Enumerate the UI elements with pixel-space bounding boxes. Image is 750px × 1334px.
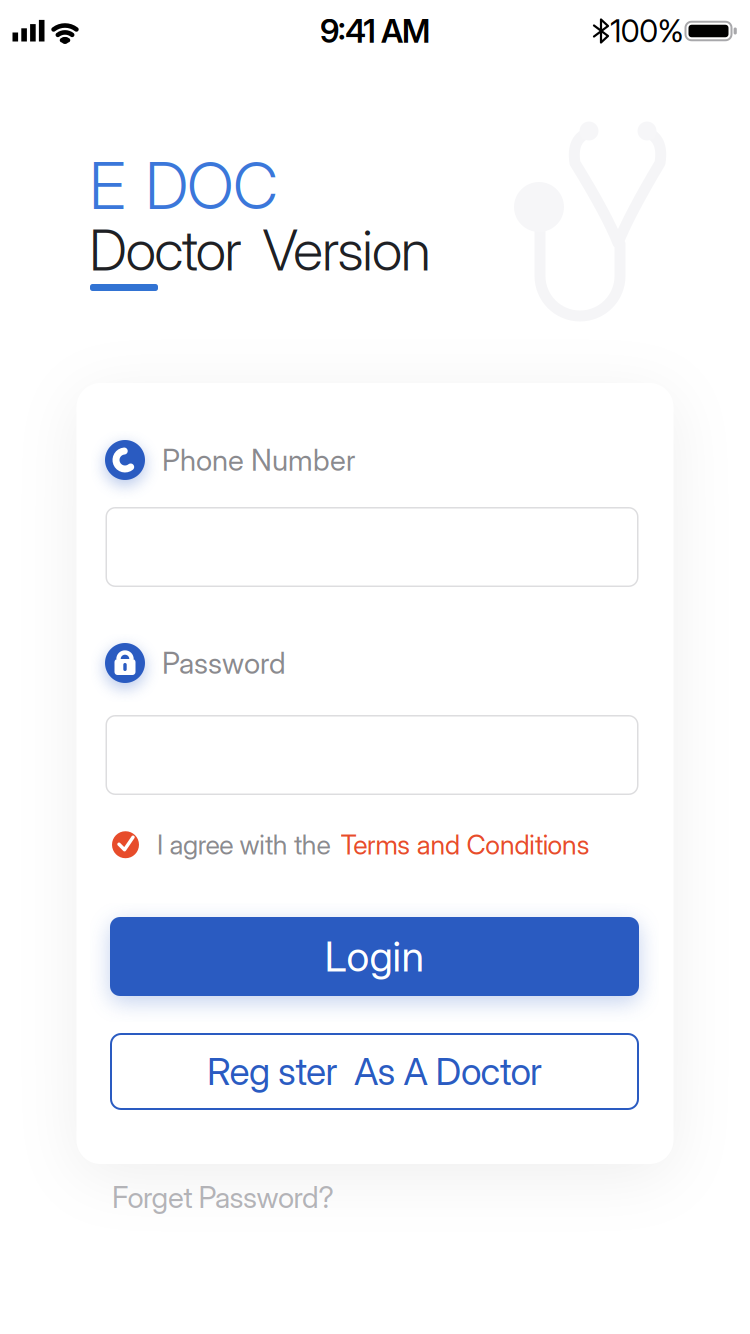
staticText: Reg ster As A Doctor: [207, 1049, 542, 1093]
staticText: Version: [262, 217, 431, 283]
staticText: Doctor: [89, 217, 241, 283]
staticText: Terms and Conditions: [340, 829, 590, 860]
staticText: Phone Number: [162, 443, 355, 477]
button[interactable]: I agree with the: [112, 829, 590, 860]
button[interactable]: Reg ster As A Doctor: [110, 1033, 639, 1110]
staticText: Password: [162, 646, 286, 680]
staticText: I agree with the: [157, 829, 330, 860]
staticText: DOC: [145, 148, 278, 223]
button[interactable]: Login: [110, 917, 639, 996]
button[interactable]: Forget Password?: [112, 1180, 333, 1215]
staticText: Forget Password?: [112, 1180, 333, 1215]
staticText: 100%: [610, 13, 684, 49]
staticText: 9:41 AM: [320, 12, 430, 50]
staticText: Login: [324, 932, 424, 981]
staticText: E: [89, 148, 126, 223]
